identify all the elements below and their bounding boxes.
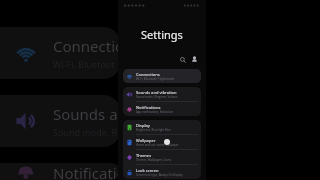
button[interactable]: Display [123, 120, 201, 134]
staticText: Notifications [136, 105, 161, 110]
staticText: Wi-Fi, Bluetoot [53, 58, 115, 70]
staticText: Sound mode, Ringtone, Volume [136, 95, 178, 99]
button[interactable]: Notification [0, 163, 120, 180]
button[interactable]: Connections [123, 69, 201, 83]
staticText: Sounds and vibration [136, 90, 177, 95]
staticText: Connections [136, 72, 160, 77]
button[interactable]: Search [178, 55, 187, 64]
staticText: Display [136, 123, 150, 128]
staticText: Wallpaper [136, 138, 156, 143]
button[interactable]: Sounds and vibration [123, 87, 201, 101]
staticText: Settings [141, 27, 183, 42]
staticText: Home and lock screen wallpaper [136, 143, 179, 147]
staticText: Sounds an [53, 104, 120, 124]
button[interactable]: Notifications [123, 102, 201, 116]
staticText: Themes [136, 153, 152, 158]
button[interactable]: Connection [0, 27, 120, 79]
staticText: Brightness, Blue light filter [136, 128, 171, 132]
staticText: App notifications, Status bar [136, 110, 174, 114]
staticText: Lock screen [136, 168, 159, 173]
button[interactable]: Sounds an [0, 95, 120, 147]
staticText: Connection [53, 36, 120, 56]
button[interactable]: Themes [123, 150, 201, 164]
staticText: Wi-Fi, Bluetooth, Flight mode [136, 77, 175, 81]
button[interactable]: Wallpaper [123, 135, 201, 149]
staticText: Notification [53, 163, 120, 180]
button[interactable]: Lock screen [123, 165, 201, 179]
staticText: Screen lock type, Always On Display [136, 173, 183, 177]
staticText: Themes, Wallpapers, Icons [136, 158, 172, 162]
staticText: Sound mode, R [53, 126, 118, 138]
button[interactable]: Profile [190, 55, 199, 64]
